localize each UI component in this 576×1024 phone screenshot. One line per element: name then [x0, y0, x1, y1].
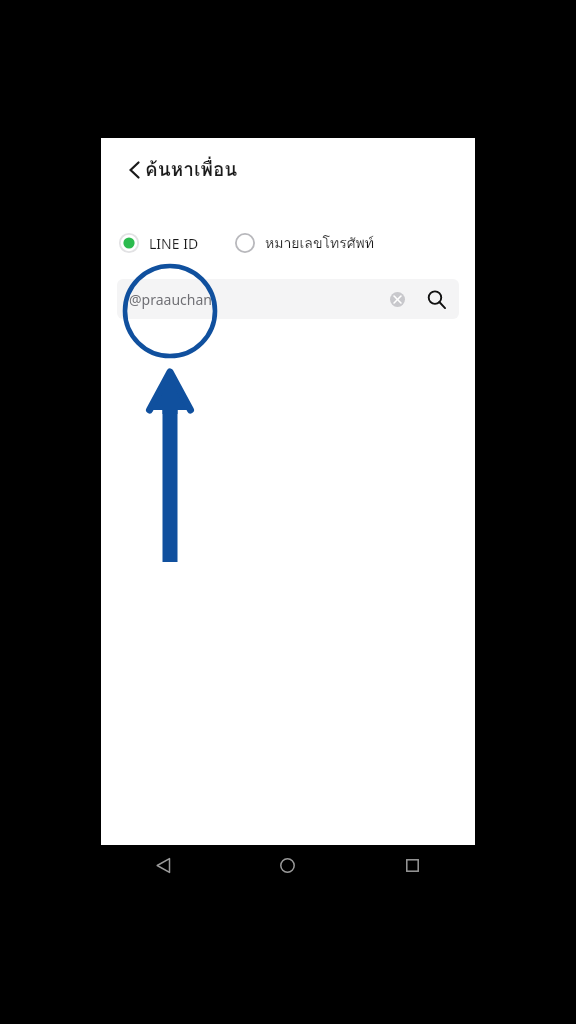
button[interactable]: หมายเลขโทรศัพท์	[227, 226, 383, 260]
button[interactable]: LINE ID	[111, 227, 207, 259]
button[interactable]: Search	[419, 282, 453, 316]
staticText: LINE ID	[149, 234, 199, 253]
button[interactable]: Back	[101, 845, 225, 885]
button[interactable]: Clear text	[383, 285, 411, 313]
staticText: @praauchan	[129, 290, 212, 309]
button[interactable]: @praauchan	[117, 279, 459, 319]
staticText: หมายเลขโทรศัพท์	[265, 232, 375, 254]
staticText: ค้นหาเพื่อน	[145, 154, 238, 184]
button[interactable]: Recent apps	[350, 845, 475, 885]
button[interactable]: Back	[113, 148, 157, 192]
button[interactable]: Home	[225, 845, 350, 885]
